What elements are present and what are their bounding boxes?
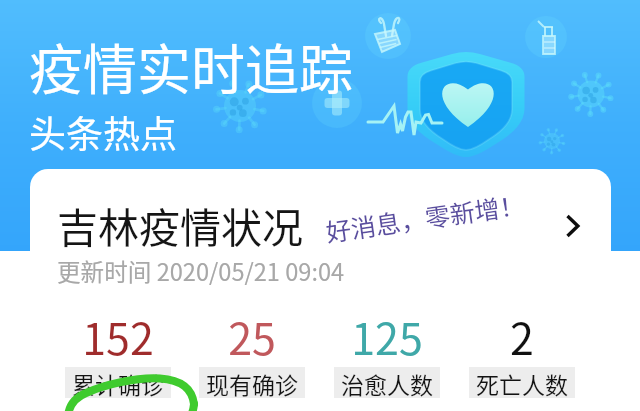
staticText: 25 (228, 305, 276, 367)
staticText: 125 (351, 305, 423, 367)
button[interactable]: 25 (185, 305, 319, 398)
staticText: 死亡人数 (476, 367, 568, 398)
staticText: 更新时间 2020/05/21 09:04 (57, 254, 345, 288)
staticText: 疫情实时追踪 (29, 27, 353, 105)
staticText: 2 (510, 305, 534, 367)
staticText: 吉林疫情状况 (57, 195, 303, 254)
button[interactable]: 125 (319, 305, 454, 398)
button[interactable]: 查看详情 (551, 204, 595, 248)
staticText: 头条热点 (29, 105, 177, 159)
staticText: 152 (82, 305, 154, 367)
button[interactable]: 2 (454, 305, 589, 398)
staticText: 治愈人数 (341, 367, 433, 398)
button[interactable]: 152 (51, 305, 185, 398)
staticText: 累计确诊 (72, 367, 164, 398)
staticText: 现有确诊 (206, 367, 298, 398)
staticText: 好消息，零新增！ (323, 185, 528, 249)
button[interactable]: 吉林疫情状况 (30, 169, 611, 411)
